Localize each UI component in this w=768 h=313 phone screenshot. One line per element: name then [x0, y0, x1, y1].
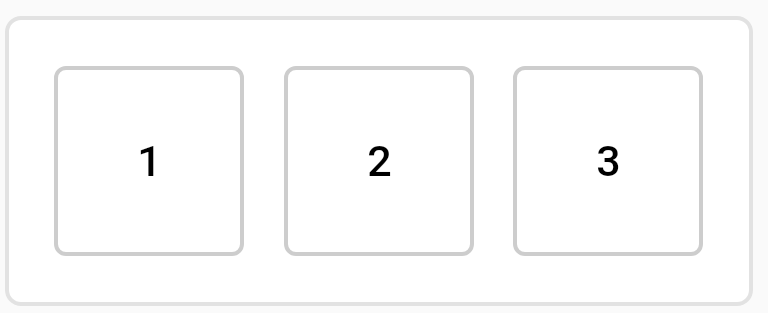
button[interactable]: 1 [54, 66, 244, 256]
staticText: 1 [137, 136, 162, 186]
button[interactable]: 2 [284, 66, 474, 256]
button[interactable]: 3 [513, 66, 703, 256]
staticText: 3 [596, 136, 621, 186]
staticText: 2 [367, 136, 392, 186]
